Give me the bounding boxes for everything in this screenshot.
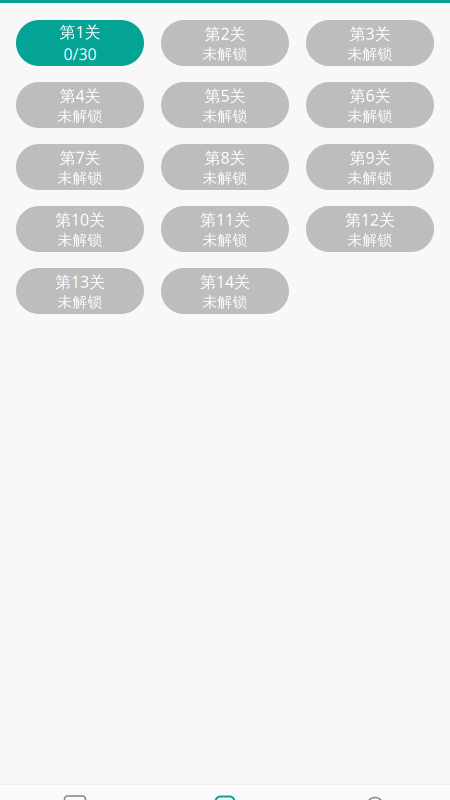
staticText: 未解锁 (347, 45, 392, 63)
staticText: 第2关 (204, 23, 245, 44)
staticText: 未解锁 (57, 107, 102, 125)
button[interactable]: 第7关 (16, 144, 144, 190)
staticText: 第5关 (204, 85, 245, 106)
button[interactable]: 第10关 (16, 206, 144, 252)
button[interactable]: 第13关 (16, 268, 144, 314)
staticText: 0/30 (63, 43, 96, 65)
staticText: 第10关 (55, 209, 105, 230)
staticText: 第8关 (204, 147, 245, 168)
button[interactable]: 第9关 (306, 144, 434, 190)
button[interactable]: 第2关 (161, 20, 289, 66)
button[interactable]: 第1关 (16, 20, 144, 66)
staticText: 第1关 (59, 21, 100, 42)
button[interactable]: 第3关 (306, 20, 434, 66)
staticText: 未解锁 (57, 293, 102, 311)
staticText: 未解锁 (57, 169, 102, 187)
staticText: 第11关 (200, 209, 250, 230)
staticText: 未解锁 (202, 169, 247, 187)
button[interactable]: Exercises (0, 785, 150, 800)
staticText: 第9关 (349, 147, 390, 168)
button[interactable]: Profile (300, 787, 450, 800)
staticText: 第3关 (349, 23, 390, 44)
staticText: 未解锁 (347, 231, 392, 249)
staticText: 未解锁 (202, 45, 247, 63)
staticText: 未解锁 (202, 293, 247, 311)
staticText: 第12关 (345, 209, 395, 230)
button[interactable]: 第12关 (306, 206, 434, 252)
staticText: 未解锁 (347, 107, 392, 125)
button[interactable]: 第4关 (16, 82, 144, 128)
staticText: 未解锁 (202, 107, 247, 125)
staticText: 第13关 (55, 271, 105, 292)
staticText: 第4关 (59, 85, 100, 106)
staticText: 未解锁 (347, 169, 392, 187)
staticText: 第7关 (59, 147, 100, 168)
staticText: 未解锁 (202, 231, 247, 249)
staticText: 第14关 (200, 271, 250, 292)
button[interactable]: 第14关 (161, 268, 289, 314)
staticText: 未解锁 (57, 231, 102, 249)
button[interactable]: 第11关 (161, 206, 289, 252)
button[interactable]: Levels (150, 785, 300, 800)
button[interactable]: 第5关 (161, 82, 289, 128)
button[interactable]: 第8关 (161, 144, 289, 190)
button[interactable]: 第6关 (306, 82, 434, 128)
staticText: 第6关 (349, 85, 390, 106)
